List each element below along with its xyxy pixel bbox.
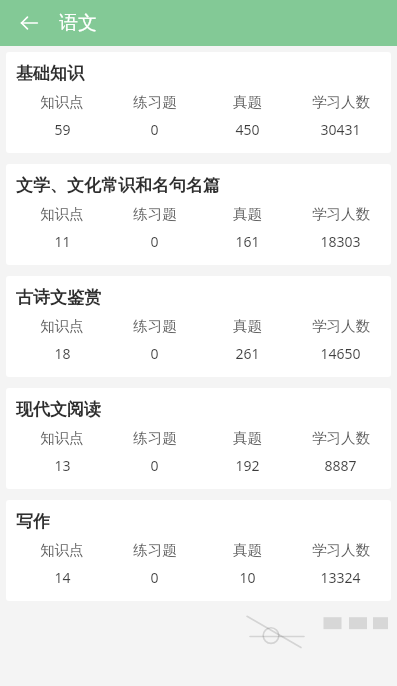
staticText: 0 [150, 344, 159, 363]
staticText: 练习题 [133, 93, 177, 111]
staticText: 450 [235, 120, 260, 139]
staticText: 0 [150, 232, 159, 251]
staticText: 真题 [233, 541, 262, 559]
staticText: 261 [235, 344, 260, 363]
staticText: 文学、文化常识和名句名篇 [16, 175, 220, 196]
staticText: 0 [150, 120, 159, 139]
staticText: 语文 [59, 11, 97, 35]
staticText: 真题 [233, 205, 262, 223]
staticText: 11 [54, 232, 71, 251]
staticText: 0 [150, 568, 159, 587]
staticText: 18303 [320, 232, 361, 251]
staticText: 练习题 [133, 429, 177, 447]
staticText: 知识点 [40, 429, 84, 447]
staticText: 写作 [16, 511, 50, 532]
staticText: 18 [54, 344, 71, 363]
staticText: 13 [54, 456, 71, 475]
staticText: 192 [235, 456, 260, 475]
staticText: 知识点 [40, 317, 84, 335]
staticText: 学习人数 [312, 541, 370, 559]
staticText: 30431 [320, 120, 361, 139]
staticText: 真题 [233, 93, 262, 111]
staticText: 基础知识 [16, 63, 84, 84]
staticText: 59 [54, 120, 71, 139]
button[interactable]: 基础知识 [6, 52, 391, 153]
button[interactable]: 古诗文鉴赏 [6, 276, 391, 377]
button[interactable]: 文学、文化常识和名句名篇 [6, 164, 391, 265]
staticText: 古诗文鉴赏 [16, 287, 101, 308]
staticText: 真题 [233, 317, 262, 335]
staticText: 学习人数 [312, 205, 370, 223]
staticText: 8887 [324, 456, 357, 475]
button[interactable]: Back [12, 6, 46, 40]
staticText: 练习题 [133, 541, 177, 559]
staticText: 161 [235, 232, 260, 251]
staticText: 练习题 [133, 205, 177, 223]
staticText: 练习题 [133, 317, 177, 335]
staticText: 学习人数 [312, 93, 370, 111]
staticText: 学习人数 [312, 429, 370, 447]
staticText: 13324 [320, 568, 361, 587]
staticText: 真题 [233, 429, 262, 447]
staticText: 现代文阅读 [16, 399, 101, 420]
staticText: 学习人数 [312, 317, 370, 335]
staticText: 知识点 [40, 541, 84, 559]
staticText: 知识点 [40, 93, 84, 111]
button[interactable]: 写作 [6, 500, 391, 601]
staticText: 14650 [320, 344, 361, 363]
staticText: 0 [150, 456, 159, 475]
staticText: 知识点 [40, 205, 84, 223]
staticText: 10 [239, 568, 256, 587]
button[interactable]: 现代文阅读 [6, 388, 391, 489]
staticText: 14 [54, 568, 71, 587]
